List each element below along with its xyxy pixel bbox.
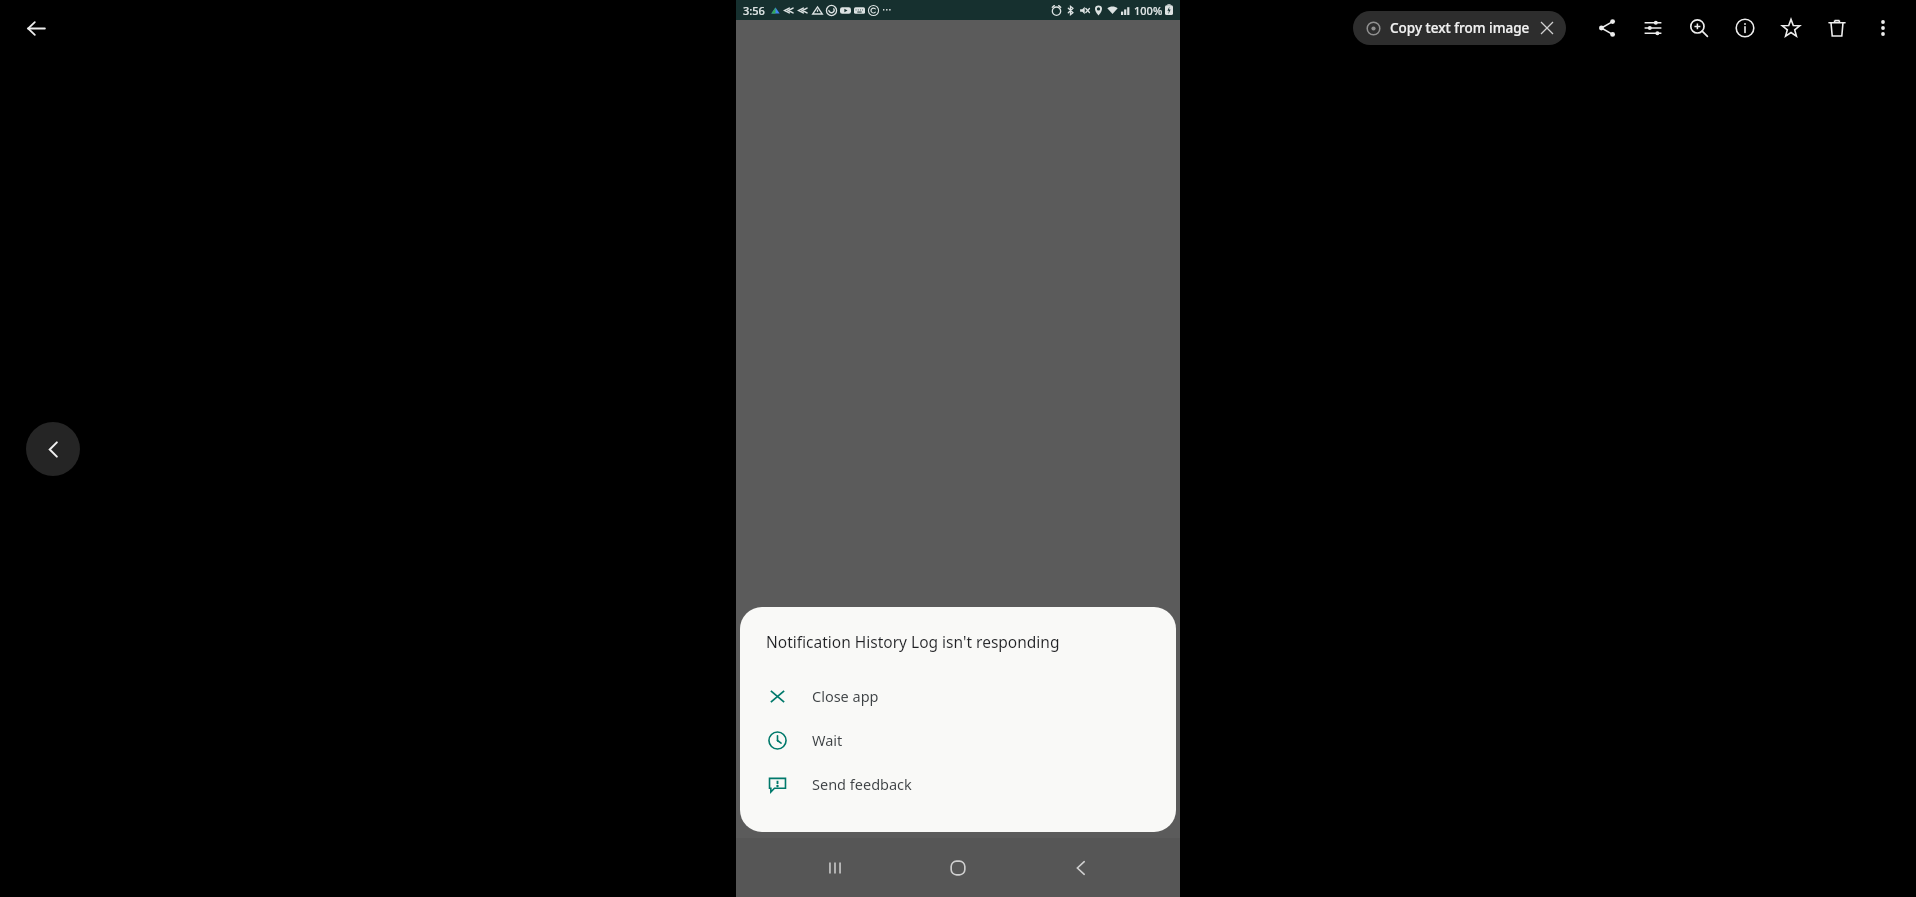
button[interactable]: Back	[14, 6, 58, 50]
staticText: Send feedback	[812, 774, 912, 794]
button[interactable]: Back	[1057, 844, 1105, 892]
button[interactable]: More options	[1860, 5, 1906, 51]
button[interactable]: Copy text from image	[1353, 11, 1566, 45]
staticText: ⋯	[882, 4, 892, 16]
button[interactable]: Wait	[740, 718, 1176, 762]
button[interactable]: Delete	[1814, 5, 1860, 51]
button[interactable]: Recent apps	[811, 844, 859, 892]
staticText: 100%	[1134, 3, 1163, 18]
staticText: Close app	[812, 686, 879, 706]
button[interactable]: Favorite	[1768, 5, 1814, 51]
button[interactable]: Share	[1584, 5, 1630, 51]
button[interactable]: Zoom in	[1676, 5, 1722, 51]
button[interactable]: Close app	[740, 674, 1176, 718]
button[interactable]: Adjust	[1630, 5, 1676, 51]
button[interactable]: Home	[934, 844, 982, 892]
staticText: 3:56	[743, 3, 765, 18]
button[interactable]: Previous	[26, 422, 80, 476]
button[interactable]: Info	[1722, 5, 1768, 51]
staticText: Notification History Log isn't respondin…	[766, 631, 1060, 652]
button[interactable]: Send feedback	[740, 762, 1176, 806]
staticText: Wait	[812, 730, 843, 750]
staticText: Copy text from image	[1390, 19, 1530, 37]
